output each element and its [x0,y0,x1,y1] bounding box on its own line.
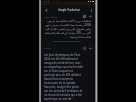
button[interactable]: Copy [81,14,87,19]
button[interactable]: Listen [87,14,93,19]
staticText: Google Traduction [58,8,80,11]
staticText: Les Jeux olympiques de Paris 2024 ont ét… [44,53,83,102]
staticText: Arabe - Détecté [44,16,58,18]
staticText: Français [44,47,51,49]
staticText: انطلقت دورة الألعاب الأولمبية باريس 2024… [44,19,91,39]
button[interactable]: Copy translation [81,45,87,51]
button[interactable]: More options [88,7,94,13]
button[interactable]: Listen to translation [87,45,93,51]
button[interactable]: Back [43,7,49,13]
